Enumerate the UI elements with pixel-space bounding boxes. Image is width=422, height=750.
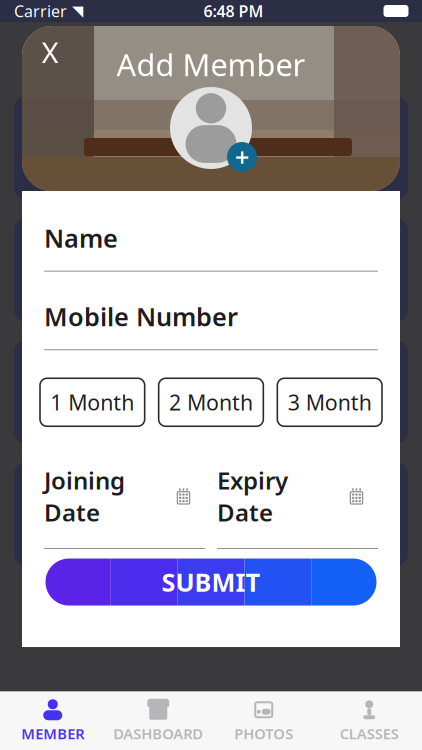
- button[interactable]: PHOTOS: [211, 692, 316, 750]
- staticText: Mobile Number: [44, 300, 238, 333]
- button[interactable]: DASHBOARD: [105, 692, 211, 750]
- staticText: Joining Date: [44, 464, 125, 528]
- staticText: 1 Month: [50, 388, 134, 416]
- staticText: 2 Month: [169, 388, 253, 416]
- staticText: SUBMIT: [161, 565, 260, 599]
- staticText: +: [235, 140, 249, 174]
- staticText: PHOTOS: [234, 724, 293, 743]
- staticText: X: [41, 32, 58, 71]
- button[interactable]: Joining Date: [44, 464, 205, 549]
- staticText: MEMBER: [21, 724, 84, 743]
- staticText: Add Member: [116, 44, 305, 85]
- staticText: ◥: [72, 3, 83, 19]
- staticText: 3 Month: [288, 388, 372, 416]
- staticText: CLASSES: [340, 724, 399, 743]
- button[interactable]: Add photo: [227, 142, 257, 172]
- staticText: Expiry Date: [217, 464, 288, 528]
- staticText: DASHBOARD: [113, 724, 203, 743]
- button[interactable]: Expiry Date: [217, 464, 378, 549]
- staticText: 6:48 PM: [203, 0, 263, 22]
- button[interactable]: 2 Month: [159, 378, 263, 426]
- button[interactable]: CLASSES: [316, 692, 422, 750]
- button[interactable]: 1 Month: [40, 378, 145, 426]
- button[interactable]: MEMBER: [0, 692, 105, 750]
- staticText: Name: [44, 221, 118, 255]
- staticText: Carrier: [14, 0, 67, 22]
- button[interactable]: Close: [30, 32, 70, 72]
- button[interactable]: 3 Month: [277, 378, 382, 426]
- button[interactable]: SUBMIT: [44, 557, 378, 607]
